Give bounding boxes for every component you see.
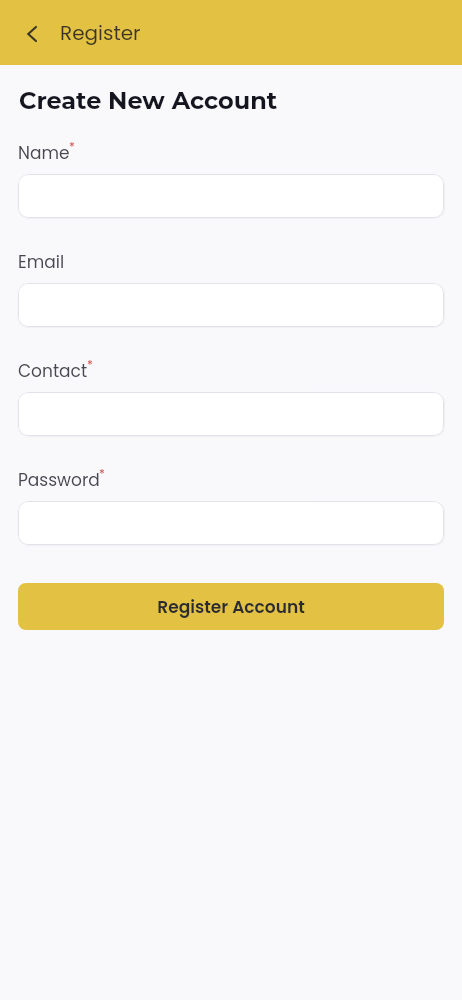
staticText: Email <box>18 250 65 274</box>
button[interactable]: Contact input field <box>18 392 444 436</box>
button[interactable]: Email input field <box>18 283 444 327</box>
button[interactable]: Register Account <box>18 583 444 630</box>
staticText: * <box>87 356 93 373</box>
button[interactable]: Name input field <box>18 174 444 218</box>
staticText: Contact <box>18 359 88 383</box>
button[interactable]: Password input field <box>18 501 444 545</box>
staticText: * <box>69 138 75 155</box>
staticText: Register Account <box>157 595 305 619</box>
button[interactable]: Back <box>14 15 50 51</box>
staticText: Password <box>18 468 100 492</box>
staticText: Create New Account <box>19 86 278 115</box>
staticText: Register <box>60 19 141 47</box>
staticText: Name <box>18 141 70 165</box>
staticText: * <box>99 465 105 482</box>
